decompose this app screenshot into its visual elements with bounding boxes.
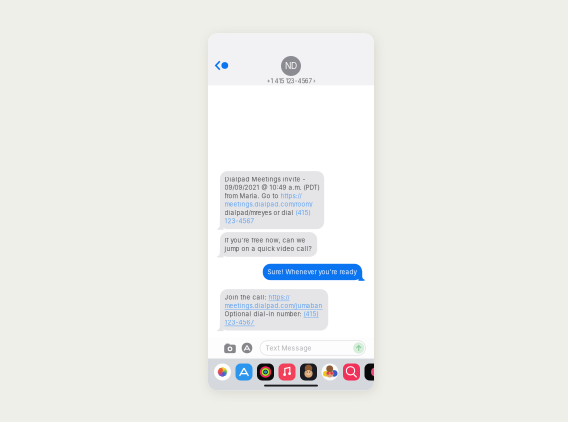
staticText: ND bbox=[285, 61, 297, 71]
button[interactable]: Fitness bbox=[257, 363, 274, 380]
staticText: Sure! Whenever you're ready bbox=[267, 268, 357, 276]
button[interactable]: Send bbox=[353, 342, 364, 354]
staticText: Text Message bbox=[265, 344, 311, 352]
staticText: Dialpad Meetings invite - 09/09/2021 @ 1… bbox=[225, 175, 320, 225]
button[interactable]: Memoji stickers bbox=[321, 363, 338, 380]
button[interactable]: App Store bbox=[235, 363, 252, 380]
button[interactable]: Images bbox=[343, 363, 360, 380]
staticText: If you're free now, can we jump on a qui… bbox=[225, 236, 312, 253]
button[interactable]: Back bbox=[208, 56, 233, 75]
button[interactable]: Camera bbox=[221, 337, 238, 358]
button[interactable]: Photos bbox=[214, 363, 231, 380]
button[interactable]: More apps bbox=[364, 363, 381, 380]
staticText: +1 415 123-4567 bbox=[267, 78, 312, 84]
staticText: Join the call: https://meetings.dialpad.… bbox=[225, 293, 323, 326]
button[interactable]: iMessage apps bbox=[238, 337, 255, 358]
button[interactable]: Memoji bbox=[300, 363, 317, 380]
button[interactable]: Music bbox=[278, 363, 295, 380]
